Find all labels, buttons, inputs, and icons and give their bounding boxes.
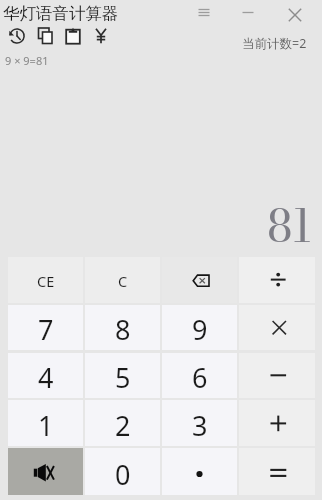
button[interactable]: Decimal point (162, 448, 237, 495)
staticText: 81 (267, 191, 312, 260)
button[interactable]: Minimize (226, 0, 270, 24)
button[interactable]: 5 (85, 353, 160, 398)
staticText: 8 (115, 311, 131, 348)
button[interactable]: 6 (162, 353, 237, 398)
button[interactable]: Copy (33, 24, 57, 48)
button[interactable]: Backspace (162, 257, 237, 303)
button[interactable]: 4 (8, 353, 83, 398)
button[interactable]: 8 (85, 305, 160, 350)
button[interactable]: Currency (89, 24, 113, 48)
staticText: 2 (115, 407, 131, 444)
staticText: 9 × 9=81 (5, 53, 49, 68)
button[interactable]: CE (8, 257, 83, 303)
button[interactable]: Close (272, 0, 318, 30)
staticText: 6 (192, 359, 208, 396)
staticText: 华灯语音计算器 (3, 3, 119, 24)
staticText: 5 (115, 359, 131, 396)
staticText: 9 (192, 311, 208, 348)
button[interactable]: C (85, 257, 160, 303)
button[interactable]: Multiply (239, 305, 315, 350)
button[interactable]: Mute (8, 448, 83, 495)
staticText: CE (37, 271, 55, 291)
staticText: C (118, 271, 128, 291)
button[interactable]: Menu (182, 0, 226, 24)
staticText: 当前计数=2 (242, 35, 307, 52)
button[interactable]: 2 (85, 400, 160, 446)
button[interactable]: Plus (239, 400, 315, 446)
button[interactable]: Divide (239, 257, 315, 303)
button[interactable]: 9 (162, 305, 237, 350)
button[interactable]: History (5, 24, 29, 48)
button[interactable]: 7 (8, 305, 83, 350)
staticText: 4 (38, 359, 54, 396)
button[interactable]: Paste (61, 24, 85, 48)
button[interactable]: 0 (85, 448, 160, 495)
button[interactable]: 1 (8, 400, 83, 446)
staticText: 0 (115, 456, 131, 493)
button[interactable]: 3 (162, 400, 237, 446)
staticText: 3 (192, 407, 208, 444)
button[interactable]: Minus (239, 353, 315, 398)
staticText: 7 (38, 311, 54, 348)
button[interactable]: Equals (239, 448, 315, 495)
staticText: 1 (38, 407, 54, 444)
